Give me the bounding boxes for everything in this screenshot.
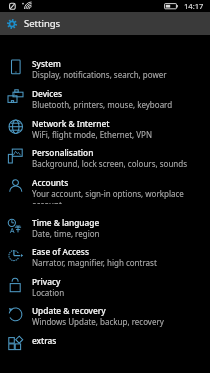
staticText: WiFi, flight mode, Ethernet, VPN (32, 129, 153, 140)
staticText: Narrator, magnifier, high contrast (32, 257, 157, 268)
staticText: Background, lock screen, colours, sounds (32, 158, 188, 169)
staticText: Date, time, region (32, 228, 100, 239)
staticText: Settings (24, 17, 61, 30)
button[interactable]: Network & Internet (0, 118, 210, 145)
staticText: Privacy (32, 276, 61, 287)
staticText: Location (32, 287, 65, 298)
staticText: Time & language (32, 217, 100, 228)
button[interactable]: Time & language (0, 217, 210, 244)
button[interactable]: Ease of Access (0, 246, 210, 273)
staticText: System (32, 58, 61, 69)
button[interactable]: Settings (0, 12, 210, 35)
staticText: Your account, sign-in options, workplace… (32, 188, 204, 204)
staticText: 14:17 (184, 1, 204, 11)
staticText: extras (32, 335, 57, 346)
staticText: Windows Update, backup, recovery (32, 316, 164, 327)
button[interactable]: Privacy (0, 276, 210, 303)
button[interactable]: Accounts (0, 177, 210, 204)
staticText: Bluetooth, printers, mouse, keyboard (32, 99, 173, 110)
staticText: Update & recovery (32, 305, 106, 316)
staticText: Accounts (32, 177, 69, 188)
button[interactable]: extras (0, 335, 210, 362)
staticText: Devices (32, 88, 63, 99)
staticText: Ease of Access (32, 246, 89, 257)
button[interactable]: Personalisation (0, 147, 210, 174)
staticText: Personalisation (32, 147, 94, 158)
button[interactable]: Update & recovery (0, 305, 210, 332)
staticText: Display, notifications, search, power (32, 69, 167, 80)
staticText: Network & Internet (32, 118, 110, 129)
button[interactable]: System (0, 58, 210, 85)
button[interactable]: Devices (0, 88, 210, 115)
